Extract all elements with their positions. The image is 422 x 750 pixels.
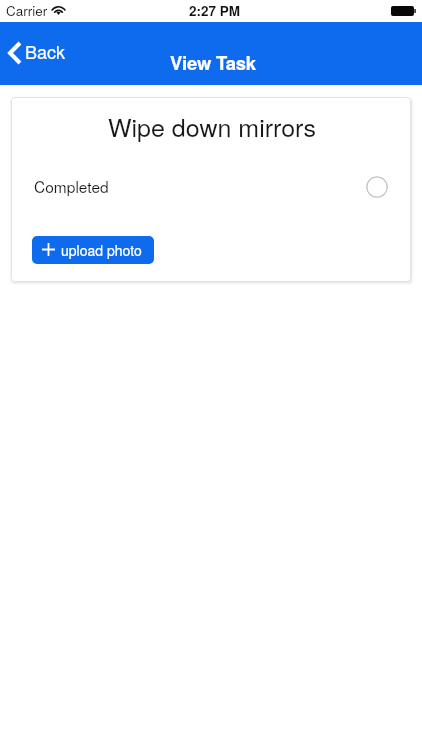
button[interactable]: Back (0, 34, 78, 68)
button[interactable]: Mark completed (366, 176, 388, 198)
staticText: Wipe down mirrors (12, 108, 411, 144)
button[interactable]: upload photo (32, 236, 154, 264)
staticText: Completed (34, 175, 109, 197)
staticText: View Task (170, 49, 256, 75)
staticText: Back (25, 38, 66, 64)
staticText: upload photo (61, 240, 142, 260)
staticText: 2:27 PM (189, 1, 241, 20)
staticText: Carrier (6, 1, 48, 20)
